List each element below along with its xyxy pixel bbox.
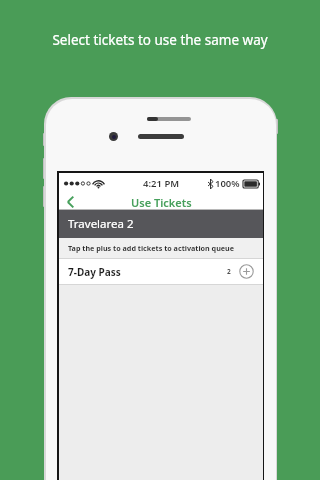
staticText: 4:21 PM <box>143 177 180 190</box>
button[interactable]: 7-Day Pass <box>59 259 263 284</box>
staticText: 2 <box>227 267 231 276</box>
staticText: Select tickets to use the same way <box>52 31 268 49</box>
staticText: Use Tickets <box>131 195 192 210</box>
staticText: Tap the plus to add tickets to activatio… <box>68 243 235 253</box>
button[interactable]: Add ticket to activation queue <box>239 264 254 279</box>
button[interactable]: Back <box>60 194 80 210</box>
staticText: 7-Day Pass <box>68 265 121 279</box>
staticText: 100% <box>215 177 240 190</box>
staticText: Travelarea 2 <box>68 216 134 232</box>
